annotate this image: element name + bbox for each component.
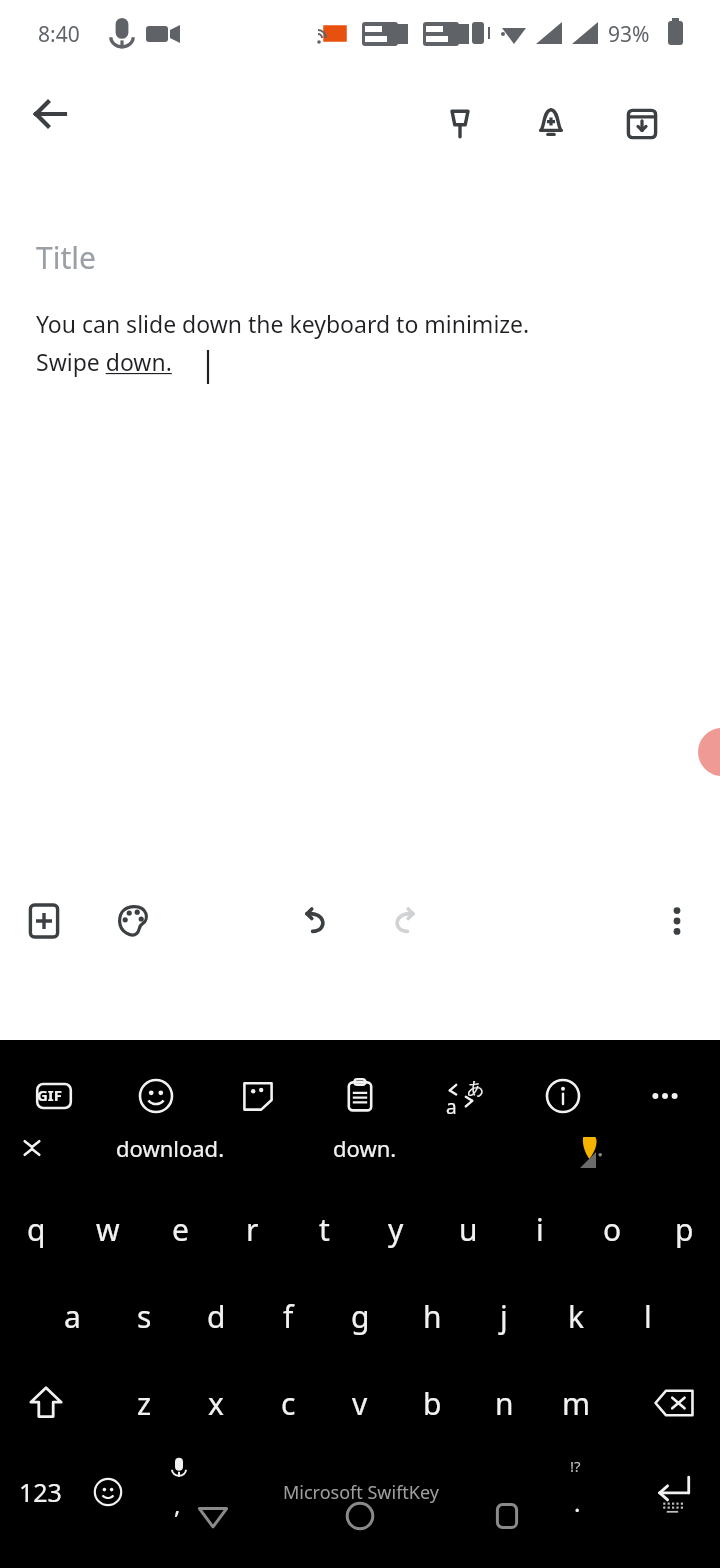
staticText: , — [174, 1488, 181, 1521]
staticText: a — [446, 1094, 457, 1120]
button[interactable]: q — [2, 1191, 70, 1267]
staticText: t — [319, 1209, 330, 1250]
button[interactable]: Title — [36, 228, 684, 286]
button[interactable]: f — [254, 1278, 322, 1354]
staticText: o — [603, 1209, 622, 1250]
button[interactable]: p — [650, 1191, 718, 1267]
button[interactable]: r — [218, 1191, 286, 1267]
button[interactable]: More options — [647, 891, 707, 951]
button[interactable]: Emoji — [76, 1452, 140, 1532]
button[interactable]: s — [110, 1278, 178, 1354]
button[interactable]: Recent apps — [477, 1486, 537, 1546]
staticText: j — [500, 1296, 508, 1337]
button[interactable]: z — [110, 1365, 178, 1441]
button[interactable]: Back — [16, 80, 84, 148]
staticText: Title — [36, 237, 96, 278]
staticText: Microsoft SwiftKey — [283, 1480, 439, 1505]
button[interactable]: y — [362, 1191, 430, 1267]
button[interactable]: Stickers — [230, 1068, 286, 1124]
button[interactable]: e — [146, 1191, 214, 1267]
staticText: g — [351, 1296, 370, 1337]
staticText: 8:40 — [38, 20, 80, 49]
button[interactable]: Close suggestions — [6, 1122, 58, 1174]
button[interactable]: x — [182, 1365, 250, 1441]
button[interactable]: u — [434, 1191, 502, 1267]
button[interactable]: Shift — [10, 1365, 82, 1441]
staticText: q — [27, 1209, 46, 1250]
button[interactable]: You can slide down the keyboard to minim… — [36, 308, 684, 388]
button[interactable]: Space — [216, 1452, 506, 1532]
staticText: p — [675, 1209, 694, 1250]
button[interactable]: Emoji — [128, 1068, 184, 1124]
button[interactable]: Redo — [375, 891, 435, 951]
staticText: a — [64, 1296, 81, 1337]
button[interactable]: GIF — [26, 1068, 82, 1124]
button[interactable]: Add reminder — [521, 94, 581, 154]
staticText: i — [536, 1209, 544, 1250]
staticText: r — [246, 1209, 259, 1250]
staticText: d — [207, 1296, 226, 1337]
button[interactable]: Undo — [285, 891, 345, 951]
button[interactable]: j — [470, 1278, 538, 1354]
button[interactable]: i — [506, 1191, 574, 1267]
staticText: y — [388, 1209, 404, 1250]
button[interactable]: c — [254, 1365, 322, 1441]
button[interactable]: More — [637, 1068, 693, 1124]
staticText: w — [96, 1209, 120, 1250]
button[interactable]: 123 — [4, 1452, 76, 1532]
button[interactable]: g — [326, 1278, 394, 1354]
staticText: b — [423, 1383, 442, 1424]
staticText: m — [562, 1383, 591, 1424]
staticText: n — [495, 1383, 514, 1424]
button[interactable]: Emoji suggestion — [535, 1122, 645, 1174]
button[interactable]: Change colour — [104, 891, 164, 951]
staticText: down. — [333, 1133, 397, 1163]
button[interactable] — [548, 1452, 618, 1532]
button[interactable]: o — [578, 1191, 646, 1267]
staticText: f — [283, 1296, 294, 1337]
staticText: h — [423, 1296, 442, 1337]
button[interactable]: l — [614, 1278, 682, 1354]
button[interactable]: Info — [535, 1068, 591, 1124]
staticText: . — [574, 1486, 581, 1519]
button[interactable]: k — [542, 1278, 610, 1354]
button[interactable]: b — [398, 1365, 466, 1441]
button[interactable]: Back — [183, 1486, 243, 1546]
button[interactable]: d — [182, 1278, 250, 1354]
staticText: c — [281, 1383, 296, 1424]
staticText: s — [137, 1296, 152, 1337]
staticText: k — [568, 1296, 585, 1337]
staticText: 123 — [19, 1475, 62, 1509]
button[interactable]: Enter — [628, 1452, 716, 1532]
staticText: v — [352, 1383, 368, 1424]
button[interactable]: m — [542, 1365, 610, 1441]
staticText: l — [644, 1296, 652, 1337]
staticText: download. — [116, 1133, 225, 1163]
button[interactable]: download. — [70, 1122, 270, 1174]
button[interactable]: Backspace — [638, 1365, 710, 1441]
staticText: x — [208, 1383, 224, 1424]
staticText: u — [459, 1209, 478, 1250]
staticText: あ — [467, 1078, 485, 1099]
button[interactable]: t — [290, 1191, 358, 1267]
button[interactable] — [146, 1452, 216, 1532]
button[interactable]: a — [38, 1278, 106, 1354]
button[interactable]: Home — [330, 1486, 390, 1546]
staticText: 93% — [608, 20, 650, 49]
button[interactable]: v — [326, 1365, 394, 1441]
button[interactable]: Add — [14, 891, 74, 951]
staticText: z — [137, 1383, 152, 1424]
button[interactable]: Clipboard — [332, 1068, 388, 1124]
staticText: You can slide down the keyboard to minim… — [36, 308, 530, 378]
button[interactable]: Pin — [430, 94, 490, 154]
button[interactable]: h — [398, 1278, 466, 1354]
staticText: e — [172, 1209, 189, 1250]
staticText: !? — [570, 1456, 581, 1476]
staticText: GIF — [37, 1085, 62, 1105]
button[interactable]: n — [470, 1365, 538, 1441]
button[interactable]: Translate — [433, 1068, 489, 1124]
button[interactable]: Archive — [612, 94, 672, 154]
button[interactable]: down. — [290, 1122, 440, 1174]
button[interactable]: w — [74, 1191, 142, 1267]
